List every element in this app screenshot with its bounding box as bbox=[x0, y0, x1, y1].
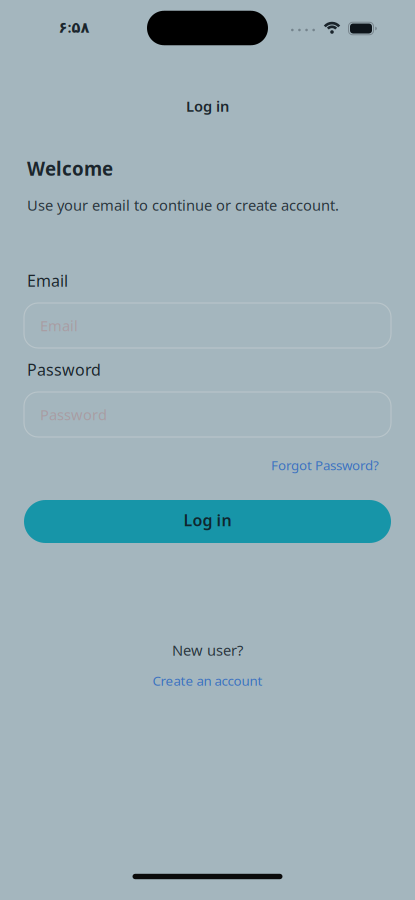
button[interactable]: Forgot Password? bbox=[271, 456, 379, 474]
staticText: Forgot Password? bbox=[271, 456, 379, 474]
staticText: Password bbox=[27, 359, 101, 380]
staticText: Email bbox=[27, 270, 68, 291]
staticText: Log in bbox=[186, 96, 229, 116]
staticText: Use your email to continue or create acc… bbox=[27, 195, 339, 215]
staticText: Welcome bbox=[27, 156, 113, 181]
staticText: New user? bbox=[172, 640, 243, 660]
staticText: Password bbox=[40, 405, 107, 424]
button[interactable]: Create an account bbox=[152, 672, 262, 689]
staticText: Create an account bbox=[152, 672, 262, 689]
button[interactable]: Log in bbox=[24, 500, 391, 543]
staticText: Log in bbox=[183, 509, 231, 531]
staticText: ۶:۵۸ bbox=[58, 17, 89, 37]
staticText: Email bbox=[40, 316, 78, 335]
button[interactable]: Password bbox=[24, 392, 391, 437]
